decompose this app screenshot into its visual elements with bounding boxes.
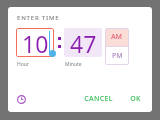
staticText: ENTER TIME [17,14,60,22]
staticText: PM [112,51,123,61]
staticText: AM [111,32,123,42]
button[interactable]: OK [125,91,146,107]
staticText: 47 [70,28,97,57]
button[interactable]: 47 [64,28,102,57]
button[interactable]: 10 [16,28,54,57]
button[interactable]: Switch to clock mode [13,91,29,107]
button[interactable]: PM [105,47,129,65]
button[interactable]: AM [105,28,129,46]
button[interactable]: CANCEL [79,91,118,107]
staticText: Minute [65,61,82,68]
staticText: Hour [17,61,29,68]
staticText: 10 [22,28,49,57]
staticText: CANCEL [84,94,113,104]
staticText: OK [130,94,141,104]
